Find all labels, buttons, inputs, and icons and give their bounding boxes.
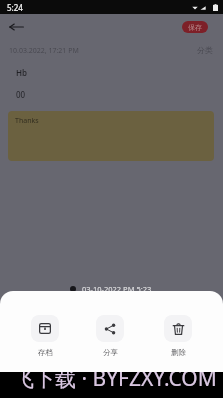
staticText: 00 xyxy=(16,89,26,100)
button[interactable]: 分享 xyxy=(96,315,124,357)
staticText: Hb xyxy=(16,67,28,78)
staticText: 5:24 xyxy=(7,2,23,13)
staticText: 分类 xyxy=(197,45,213,55)
staticText: 03-10-2022 PM 5:23 xyxy=(82,284,152,294)
staticText: 10.03.2022, 17:21 PM xyxy=(9,46,79,56)
button[interactable]: 分类 xyxy=(197,45,213,55)
button[interactable]: Back xyxy=(8,20,25,33)
staticText: 存档 xyxy=(38,348,53,357)
staticText: 分享 xyxy=(103,348,118,357)
staticText: 飞下载 · BYFZXY.COM xyxy=(13,364,217,393)
button[interactable]: 删除 xyxy=(164,315,192,357)
staticText: 删除 xyxy=(171,348,186,357)
button[interactable]: 保存 xyxy=(182,21,208,33)
button[interactable]: 存档 xyxy=(31,315,59,357)
staticText: 保存 xyxy=(188,23,202,32)
staticText: Thanks xyxy=(15,116,39,126)
